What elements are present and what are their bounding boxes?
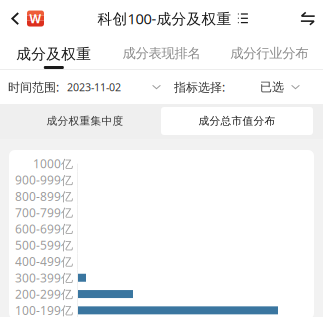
- button[interactable]: 2023-11-02: [59, 70, 161, 104]
- button[interactable]: 成分行业分布: [215, 33, 323, 69]
- button[interactable]: Back: [10, 2, 20, 35]
- button[interactable]: 成分表现排名: [108, 33, 215, 69]
- staticText: 2023-11-02: [67, 80, 121, 94]
- staticText: 400-499亿: [15, 253, 73, 269]
- staticText: 成分行业分布: [230, 45, 308, 61]
- button[interactable]: 成分及权重: [0, 33, 108, 69]
- button[interactable]: 成分总市值分布: [161, 107, 313, 135]
- button[interactable]: 已选: [225, 70, 300, 104]
- staticText: 200-299亿: [15, 286, 73, 302]
- staticText: 300-399亿: [15, 270, 73, 286]
- staticText: 科创100-成分及权重: [97, 9, 231, 28]
- staticText: 成分权重集中度: [46, 114, 123, 127]
- staticText: 时间范围:: [8, 79, 59, 95]
- staticText: 100-199亿: [15, 302, 73, 317]
- button[interactable]: 科创100-成分及权重: [97, 2, 248, 35]
- staticText: 成分及权重: [16, 45, 91, 63]
- staticText: 1000亿: [33, 156, 73, 172]
- staticText: 成分总市值分布: [198, 114, 275, 127]
- staticText: 900-999亿: [15, 172, 73, 188]
- staticText: 指标选择:: [174, 79, 225, 95]
- staticText: 600-699亿: [15, 221, 73, 237]
- staticText: 500-599亿: [15, 237, 73, 253]
- staticText: W: [29, 10, 41, 26]
- button[interactable]: Switch view: [297, 2, 319, 35]
- staticText: 700-799亿: [15, 205, 73, 220]
- button[interactable]: 成分权重集中度: [9, 107, 161, 135]
- staticText: 800-899亿: [15, 188, 73, 204]
- button[interactable]: Wind: [27, 2, 44, 35]
- staticText: 已选: [260, 80, 284, 94]
- staticText: 成分表现排名: [122, 45, 200, 61]
